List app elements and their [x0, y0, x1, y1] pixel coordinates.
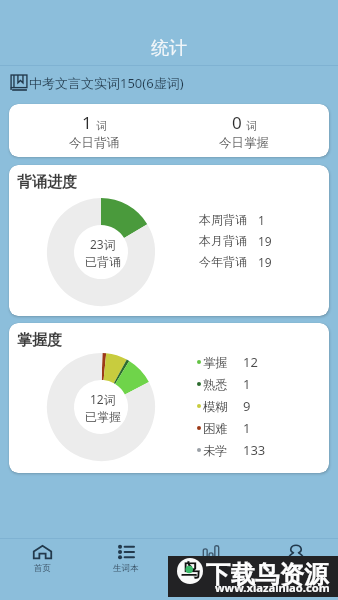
button[interactable]: Vocabulary book	[84, 539, 168, 579]
button[interactable]: Home	[0, 539, 84, 579]
staticText: 掌握	[203, 355, 228, 370]
staticText: 1	[243, 375, 251, 393]
staticText: 1	[82, 111, 92, 134]
staticText: 已掌握	[85, 409, 121, 424]
staticText: 本月背诵	[199, 233, 247, 248]
button[interactable]: 0	[169, 104, 319, 157]
staticText: 未学	[203, 443, 228, 458]
other: Statistics	[203, 545, 219, 559]
button[interactable]: Profile	[253, 539, 338, 579]
button[interactable]: Statistics	[168, 539, 253, 579]
staticText: 133	[243, 441, 266, 459]
staticText: 熟悉	[203, 377, 228, 392]
staticText: 23词	[90, 236, 116, 252]
staticText: www.xiazainiao.com	[215, 580, 330, 595]
staticText: 1	[258, 212, 265, 228]
staticText: 今日掌握	[219, 135, 269, 151]
staticText: 今年背诵	[199, 254, 247, 269]
staticText: 1	[243, 419, 251, 437]
staticText: 19	[258, 254, 272, 270]
staticText: 0	[232, 111, 242, 134]
staticText: 首页	[34, 563, 51, 574]
staticText: 中考文言文实词150(6虚词)	[29, 74, 184, 92]
staticText: 19	[258, 233, 272, 249]
staticText: 模糊	[203, 399, 228, 414]
staticText: 掌握度	[17, 331, 62, 350]
staticText: 本周背诵	[199, 212, 247, 227]
staticText: 已背诵	[85, 254, 121, 269]
other: Vocabulary book	[118, 545, 135, 559]
staticText: 今日背诵	[69, 135, 119, 151]
staticText: 鸟	[181, 559, 200, 583]
other: Book	[10, 74, 28, 91]
staticText: 困难	[203, 421, 228, 436]
staticText: 12词	[90, 391, 116, 407]
staticText: 我的	[287, 563, 304, 574]
staticText: 下载鸟资源	[206, 559, 329, 590]
staticText: 词	[96, 119, 107, 133]
button[interactable]: 1	[19, 104, 169, 157]
staticText: 生词本	[113, 563, 139, 574]
other: Profile	[288, 545, 304, 559]
staticText: 统计	[151, 37, 187, 60]
staticText: 词	[246, 119, 257, 133]
staticText: 背诵进度	[17, 173, 77, 192]
staticText: 统计	[202, 563, 219, 574]
other: Home	[33, 545, 52, 559]
staticText: 12	[243, 353, 258, 371]
staticText: 9	[243, 397, 251, 415]
